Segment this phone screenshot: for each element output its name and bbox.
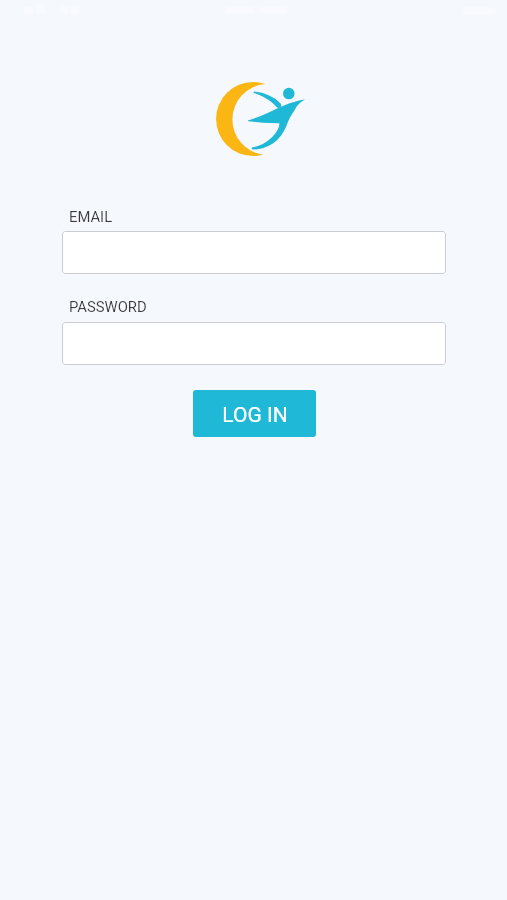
button[interactable]	[62, 322, 446, 365]
staticText: PASSWORD	[69, 298, 147, 315]
button[interactable]	[62, 231, 446, 274]
button[interactable]: LOG IN	[193, 390, 316, 437]
staticText: LOG IN	[222, 403, 288, 428]
staticText: EMAIL	[69, 208, 113, 225]
